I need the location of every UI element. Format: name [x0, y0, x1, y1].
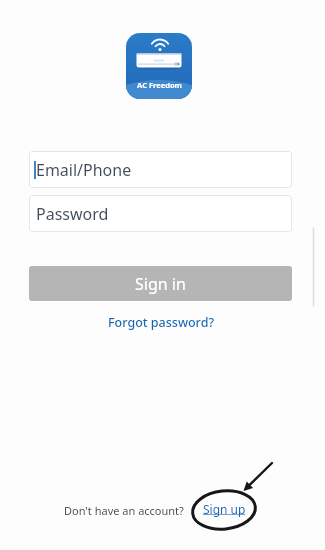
button[interactable]: Sign up	[203, 501, 246, 517]
button[interactable]: Email/Phone	[29, 151, 292, 188]
staticText: Don't have an account?	[64, 503, 184, 518]
button[interactable]: Password	[29, 195, 292, 232]
staticText: Password	[36, 203, 109, 225]
button[interactable]: Sign in	[29, 266, 292, 301]
staticText: Sign in	[135, 273, 186, 295]
staticText: AC Freedom	[137, 80, 182, 90]
staticText: Email/Phone	[36, 159, 132, 181]
button[interactable]: Forgot password?	[108, 314, 214, 331]
button[interactable]: AC Freedom	[126, 33, 192, 99]
